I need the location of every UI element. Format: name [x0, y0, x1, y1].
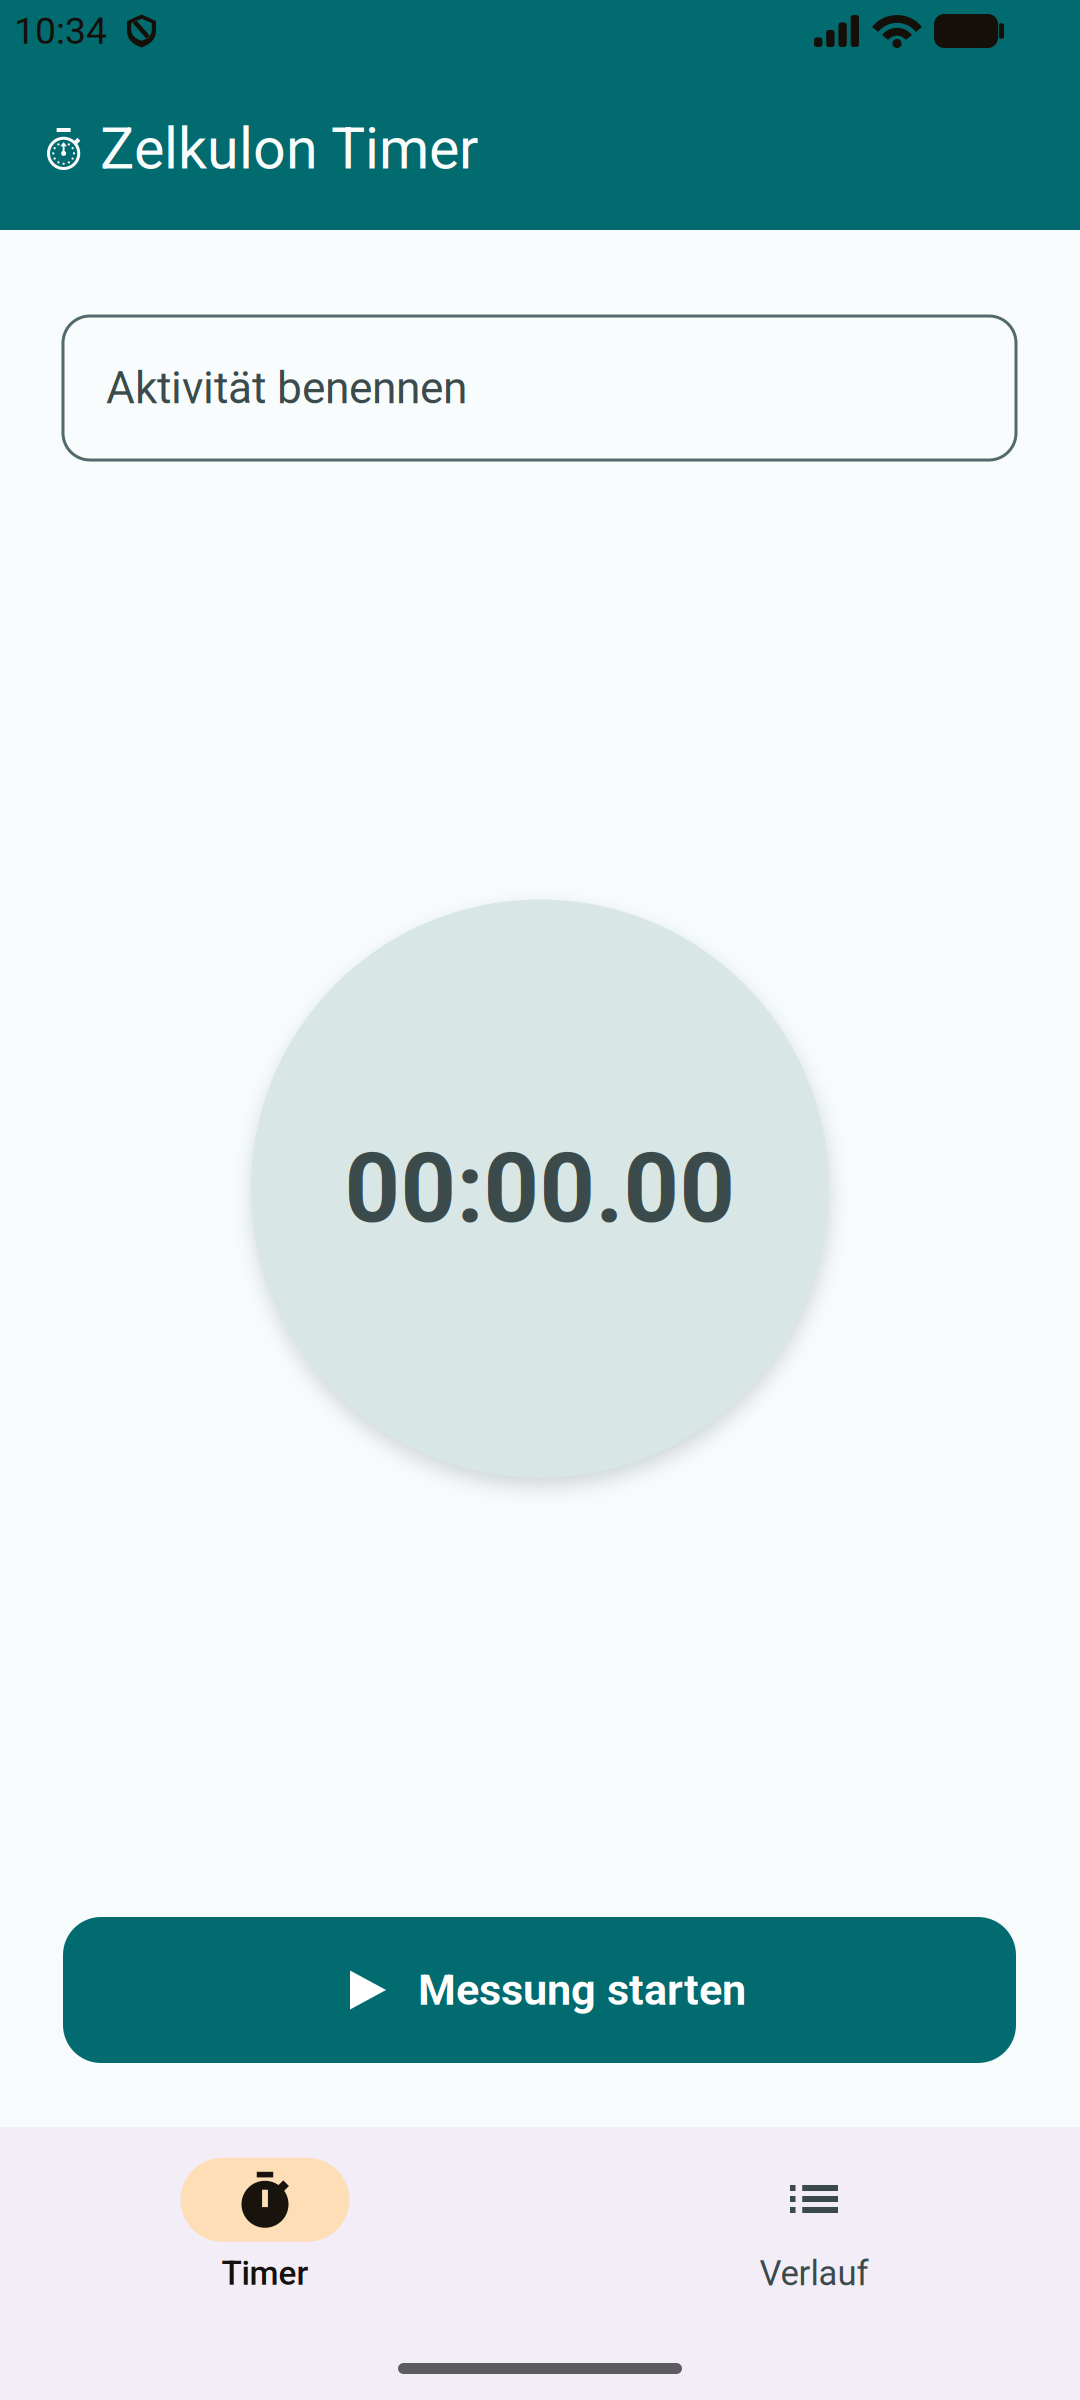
- staticText: Aktivität benennen: [106, 362, 467, 414]
- staticText: 10:34: [14, 9, 107, 53]
- staticText: 00:00.00: [344, 1132, 735, 1245]
- staticText: Verlauf: [759, 2253, 868, 2294]
- staticText: Zelkulon Timer: [100, 115, 478, 183]
- staticText: Messung starten: [418, 1965, 746, 2015]
- button[interactable]: Timer: [0, 2158, 530, 2293]
- button[interactable]: Messung starten: [63, 1917, 1016, 2063]
- button[interactable]: Verlauf: [539, 2157, 1080, 2294]
- button[interactable]: Aktivität benennen: [63, 316, 1016, 460]
- staticText: Timer: [221, 2254, 308, 2293]
